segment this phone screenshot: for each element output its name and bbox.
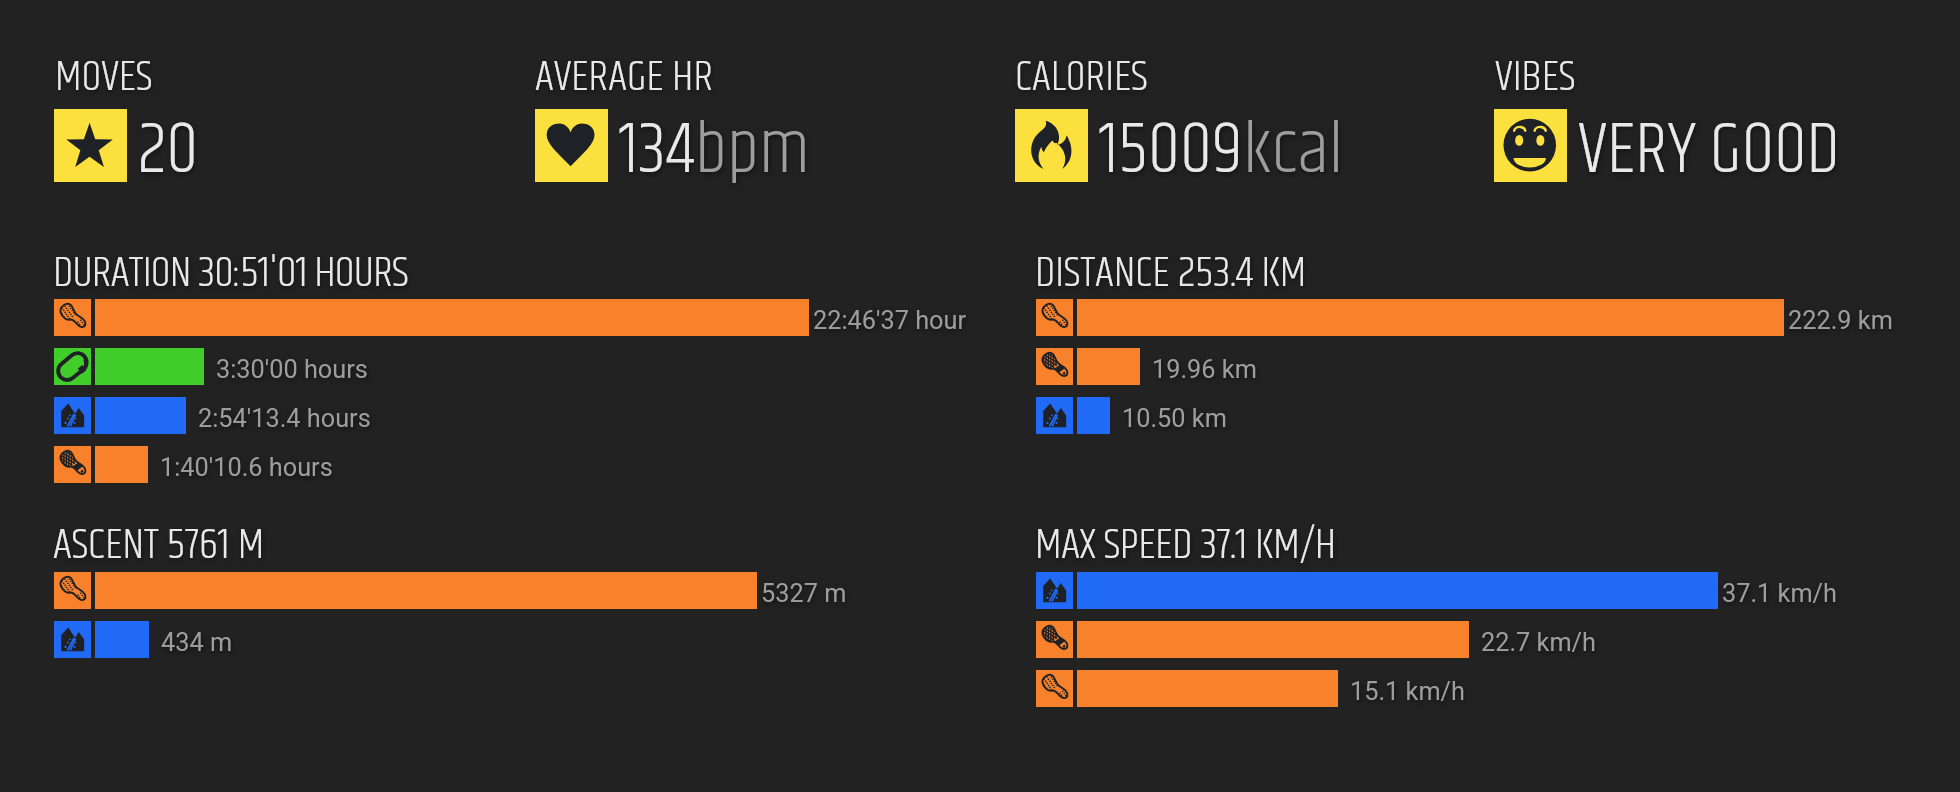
button[interactable]: 2:54'13.4 hours	[54, 397, 371, 434]
staticText: ASCENT 5761 M	[53, 512, 265, 579]
staticText: 134	[619, 96, 695, 196]
staticText: MOVES	[55, 44, 153, 111]
button[interactable]: 1:40'10.6 hours	[54, 446, 333, 483]
staticText: bpm	[695, 96, 810, 196]
staticText: VERY GOOD	[1578, 96, 1840, 196]
staticText: 1:40'10.6 hours	[160, 453, 333, 483]
button[interactable]: 3:30'00 hours	[54, 348, 368, 385]
staticText: VIBES	[1495, 44, 1576, 111]
staticText: 19.96 km	[1152, 355, 1257, 385]
staticText: AVERAGE HR	[535, 44, 714, 111]
staticText: 222.9 km	[1788, 306, 1893, 336]
button[interactable]: 22.7 km/h	[1036, 621, 1596, 658]
button[interactable]: 10.50 km	[1036, 397, 1227, 434]
staticText: 37.1 km/h	[1722, 579, 1837, 609]
button[interactable]: 19.96 km	[1036, 348, 1257, 385]
button[interactable]: Calories	[1015, 109, 1088, 182]
button[interactable]: 15.1 km/h	[1036, 670, 1465, 707]
staticText: 20	[138, 96, 199, 196]
staticText: 5327 m	[761, 579, 847, 609]
button[interactable]: 222.9 km	[1036, 299, 1893, 336]
button[interactable]: 5327 m	[54, 572, 847, 609]
button[interactable]: Moves	[54, 109, 199, 209]
staticText: DURATION 30:51'01 HOURS	[53, 240, 408, 307]
button[interactable]: Vibes	[1494, 109, 1840, 209]
button[interactable]: Vibes	[1494, 109, 1567, 182]
button[interactable]: 434 m	[54, 621, 233, 658]
staticText: MAX SPEED 37.1 KM/H	[1035, 512, 1336, 579]
button[interactable]: 37.1 km/h	[1036, 572, 1837, 609]
staticText: 434 m	[161, 628, 233, 658]
staticText: 10.50 km	[1122, 404, 1227, 434]
staticText: 22.7 km/h	[1481, 628, 1596, 658]
staticText: kcal	[1243, 96, 1344, 196]
staticText: 3:30'00 hours	[216, 355, 368, 385]
button[interactable]: Moves	[54, 109, 127, 182]
button[interactable]: Average heart rate	[535, 109, 608, 182]
staticText: 2:54'13.4 hours	[198, 404, 371, 434]
staticText: 15009	[1099, 96, 1243, 196]
staticText: 15.1 km/h	[1350, 677, 1465, 707]
button[interactable]: Calories	[1015, 109, 1344, 209]
staticText: CALORIES	[1015, 44, 1148, 111]
button[interactable]: 22:46'37 hour	[54, 299, 967, 336]
staticText: DISTANCE 253.4 KM	[1035, 240, 1307, 307]
button[interactable]: Average heart rate	[535, 109, 810, 209]
staticText: 22:46'37 hour	[813, 306, 967, 336]
